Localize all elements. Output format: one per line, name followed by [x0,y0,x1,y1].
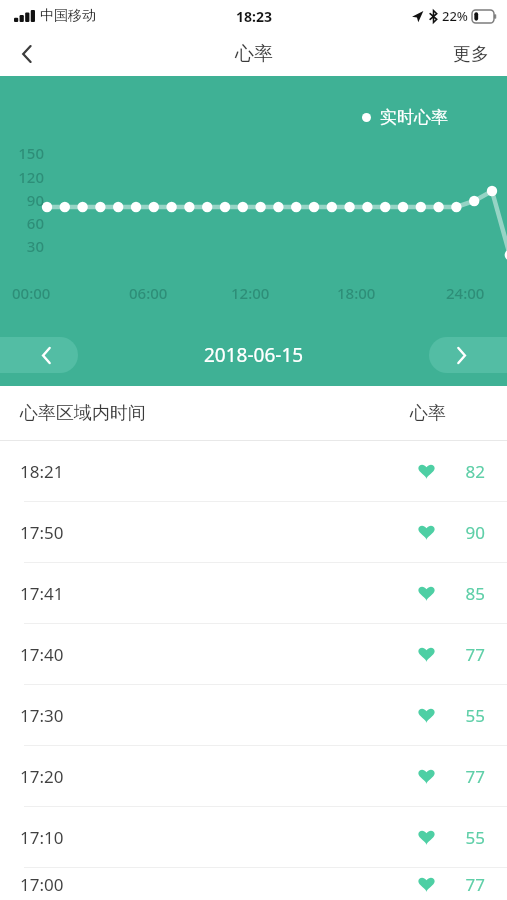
button[interactable]: 更多 [435,32,507,76]
staticText: 心率 [410,402,446,425]
staticText: 17:20 [20,765,64,788]
staticText: 77 [459,873,485,896]
staticText: 85 [459,582,485,605]
staticText: 90 [0,190,44,210]
button[interactable]: Back [0,32,54,76]
staticText: 60 [0,213,44,233]
staticText: 90 [459,521,485,544]
staticText: 17:50 [20,521,64,544]
staticText: 77 [459,643,485,666]
button[interactable]: Previous day [0,337,78,373]
staticText: 18:00 [337,283,376,303]
button[interactable]: 17:50 [0,502,507,563]
button[interactable]: 17:40 [0,624,507,685]
staticText: 18:23 [236,7,272,26]
staticText: 17:41 [20,582,64,605]
button[interactable]: Next day [429,337,507,373]
button[interactable]: 18:21 [0,441,507,502]
staticText: 00:00 [12,283,51,303]
staticText: 22% [442,7,468,25]
staticText: 17:00 [20,873,64,896]
button[interactable]: 17:00 [0,868,507,900]
staticText: 18:21 [20,460,64,483]
staticText: 24:00 [446,283,485,303]
staticText: 82 [459,460,485,483]
staticText: 30 [0,236,44,256]
staticText: 实时心率 [380,107,448,128]
staticText: 2018-06-15 [204,342,304,368]
button[interactable]: 17:10 [0,807,507,868]
staticText: 中国移动 [40,7,96,25]
staticText: 55 [459,704,485,727]
staticText: 06:00 [129,283,168,303]
staticText: 心率 [235,42,273,66]
staticText: 12:00 [231,283,270,303]
staticText: 120 [0,167,44,187]
staticText: 心率区域内时间 [20,402,146,425]
staticText: 55 [459,826,485,849]
staticText: 77 [459,765,485,788]
button[interactable]: 17:30 [0,685,507,746]
staticText: 17:30 [20,704,64,727]
staticText: 更多 [453,43,489,66]
staticText: 150 [0,143,44,163]
staticText: 17:40 [20,643,64,666]
staticText: 17:10 [20,826,64,849]
button[interactable]: 17:20 [0,746,507,807]
button[interactable]: 17:41 [0,563,507,624]
